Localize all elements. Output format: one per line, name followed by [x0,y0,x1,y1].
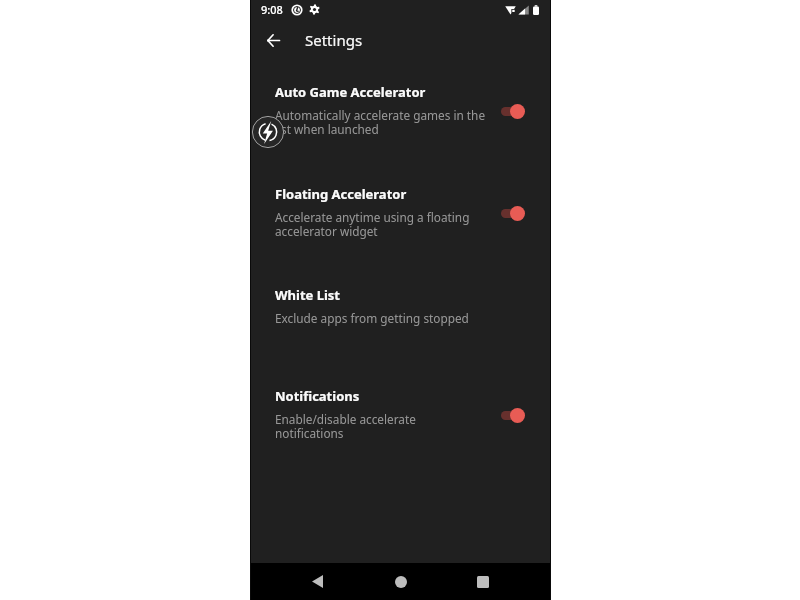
button[interactable]: Notifications toggle, on [499,406,527,424]
button[interactable]: Floating Accelerator toggle, on [499,204,527,222]
staticText: Floating Accelerator [275,185,407,203]
staticText: Enable/disable accelerate notifications [275,411,416,441]
button[interactable]: Back [259,26,287,54]
staticText: Accelerate anytime using a floating acce… [275,209,470,239]
button[interactable]: Home [379,563,423,600]
button[interactable]: Auto Game Accelerator [250,80,551,176]
staticText: Auto Game Accelerator [275,83,426,101]
staticText: Exclude apps from getting stopped [275,310,469,326]
button[interactable]: Auto Game Accelerator toggle, on [499,102,527,120]
button[interactable]: Floating Accelerator [250,182,551,278]
button[interactable]: Notifications [250,384,551,480]
staticText: White List [275,286,341,304]
staticText: Notifications [275,387,360,405]
button[interactable]: Floating accelerator [251,115,285,149]
staticText: 9:08 [261,2,283,17]
button[interactable]: Back [295,563,339,600]
staticText: Settings [305,30,363,50]
button[interactable]: Recent apps [461,563,505,600]
button[interactable]: White List [250,283,551,379]
staticText: Automatically accelerate games in the li… [275,107,486,137]
